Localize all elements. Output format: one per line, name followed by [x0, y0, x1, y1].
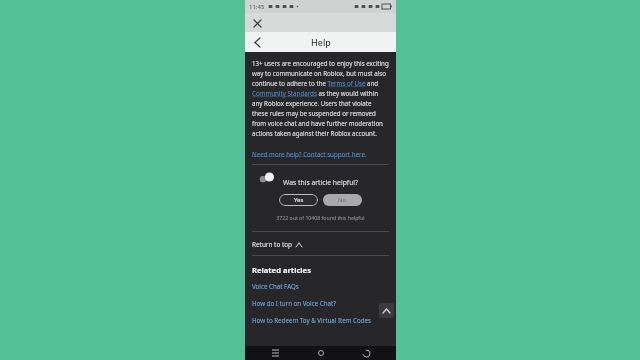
button[interactable]: Back	[249, 34, 265, 50]
staticText: Help	[311, 36, 331, 48]
button[interactable]: No	[323, 194, 362, 206]
staticText: 3722 out of 10408 found this helpful	[252, 214, 389, 221]
staticText: How to Redeem Toy & Virtual Item Codes	[252, 316, 372, 324]
button[interactable]: Yes	[279, 194, 318, 206]
staticText: Return to top	[252, 240, 293, 249]
button[interactable]: Recent apps	[260, 346, 290, 360]
staticText: 11:45	[249, 3, 265, 11]
staticText: Was this article helpful?	[252, 178, 389, 187]
button[interactable]: Need more help? Contact support here.	[252, 150, 367, 158]
button[interactable]: Close	[250, 16, 264, 30]
staticText: No	[338, 196, 347, 204]
button[interactable]: Home	[306, 346, 336, 360]
staticText: How do I turn on Voice Chat?	[252, 299, 336, 307]
button[interactable]: Back	[351, 346, 381, 360]
staticText: Voice Chat FAQs	[252, 282, 299, 290]
button[interactable]: How to Redeem Toy & Virtual Item Codes	[252, 316, 389, 324]
staticText: Yes	[294, 196, 304, 204]
staticText: Related articles	[252, 265, 311, 275]
button[interactable]: Scroll to top	[379, 303, 394, 318]
button[interactable]: Return to top	[252, 240, 389, 249]
staticText: 13+ users are encouraged to enjoy this e…	[252, 59, 389, 138]
button[interactable]: Voice Chat FAQs	[252, 282, 389, 290]
button[interactable]: How do I turn on Voice Chat?	[252, 299, 389, 307]
staticText: Need more help? Contact support here.	[252, 150, 367, 158]
